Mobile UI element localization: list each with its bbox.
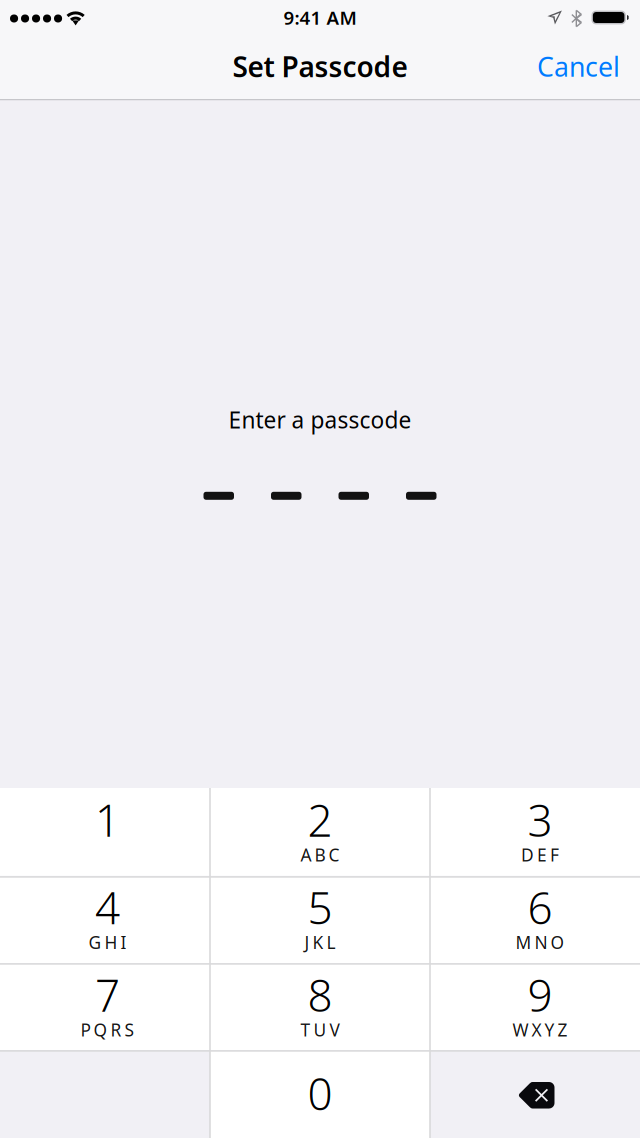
button[interactable]: 3 xyxy=(430,788,640,875)
button[interactable]: 9 xyxy=(430,963,640,1050)
staticText: M N O xyxy=(515,931,564,954)
button[interactable]: 5 xyxy=(210,875,430,963)
staticText: 0 xyxy=(307,1064,332,1122)
staticText: 9 xyxy=(527,965,552,1024)
staticText: Set Passcode xyxy=(232,48,407,85)
staticText: D E F xyxy=(521,843,559,866)
button[interactable]: 2 xyxy=(210,788,430,875)
staticText: T U V xyxy=(300,1018,339,1041)
staticText: Enter a passcode xyxy=(228,405,411,435)
staticText: J K L xyxy=(304,931,335,954)
staticText: 3 xyxy=(527,790,552,849)
staticText: G H I xyxy=(88,931,126,954)
staticText: 5 xyxy=(307,878,332,936)
staticText: 2 xyxy=(307,790,332,849)
button[interactable]: 7 xyxy=(0,963,210,1050)
staticText: W X Y Z xyxy=(512,1018,567,1041)
staticText: Cancel xyxy=(537,49,620,84)
staticText: 1 xyxy=(95,790,120,849)
staticText: 7 xyxy=(95,965,120,1024)
button[interactable]: 4 xyxy=(0,875,210,963)
button[interactable]: 0 xyxy=(210,1050,430,1138)
staticText: 6 xyxy=(527,878,552,936)
button[interactable]: 1 xyxy=(0,788,210,875)
staticText: A B C xyxy=(300,843,339,866)
staticText: 8 xyxy=(307,965,332,1024)
staticText: P Q R S xyxy=(80,1018,134,1041)
button[interactable]: Cancel xyxy=(517,39,640,99)
button[interactable]: 8 xyxy=(210,963,430,1050)
staticText: 9:41 AM xyxy=(283,5,356,30)
button[interactable]: 6 xyxy=(430,875,640,963)
button[interactable]: Delete xyxy=(430,1050,640,1138)
staticText: 4 xyxy=(95,878,120,936)
